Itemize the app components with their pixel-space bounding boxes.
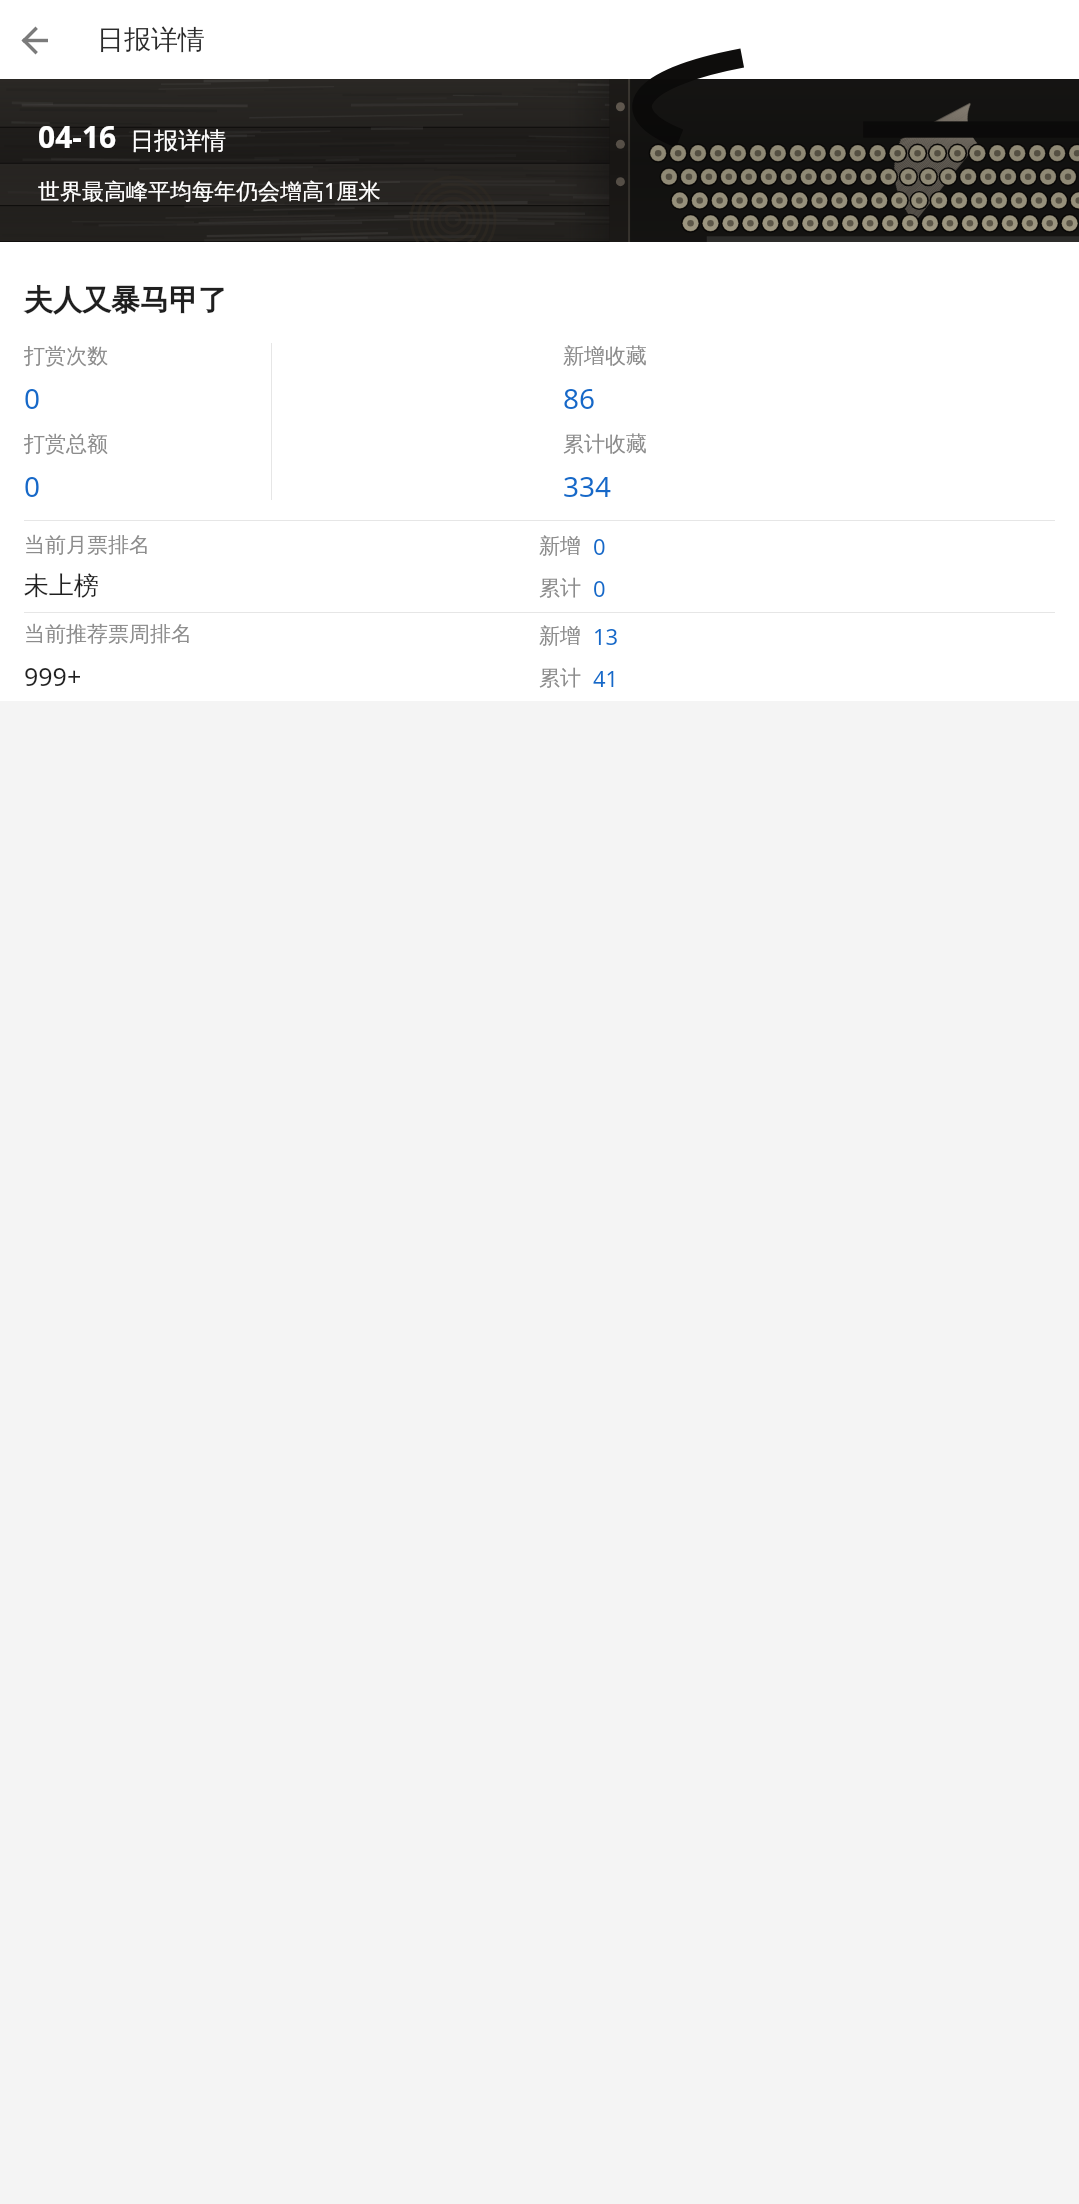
staticText: 新增 (539, 623, 581, 649)
button[interactable]: 当前月票排名 (0, 521, 1079, 612)
staticText: 86 (563, 379, 596, 417)
button[interactable]: 当前推荐票周排名 (0, 613, 1079, 701)
staticText: 世界最高峰平均每年仍会增高1厘米 (38, 175, 381, 205)
staticText: 日报详情 (130, 126, 226, 156)
staticText: 13 (593, 621, 619, 651)
staticText: 新增 (539, 533, 581, 559)
staticText: 当前月票排名 (24, 532, 150, 558)
staticText: 0 (24, 467, 41, 500)
staticText: 999+ (24, 659, 82, 693)
staticText: 04-16 (38, 116, 117, 157)
staticText: 累计 (539, 575, 581, 601)
staticText: 累计收藏 (563, 431, 647, 457)
button[interactable]: Back (8, 13, 62, 67)
staticText: 0 (593, 573, 606, 603)
staticText: 打赏次数 (24, 343, 108, 369)
staticText: 日报详情 (97, 23, 205, 57)
staticText: 当前推荐票周排名 (24, 621, 192, 647)
staticText: 0 (24, 379, 41, 417)
staticText: 新增收藏 (563, 343, 647, 369)
staticText: 打赏总额 (24, 431, 108, 457)
staticText: 0 (593, 531, 606, 561)
staticText: 334 (563, 467, 612, 500)
staticText: 未上榜 (24, 570, 99, 601)
staticText: 夫人又暴马甲了 (24, 282, 227, 319)
staticText: 41 (593, 663, 619, 693)
staticText: 累计 (539, 665, 581, 691)
